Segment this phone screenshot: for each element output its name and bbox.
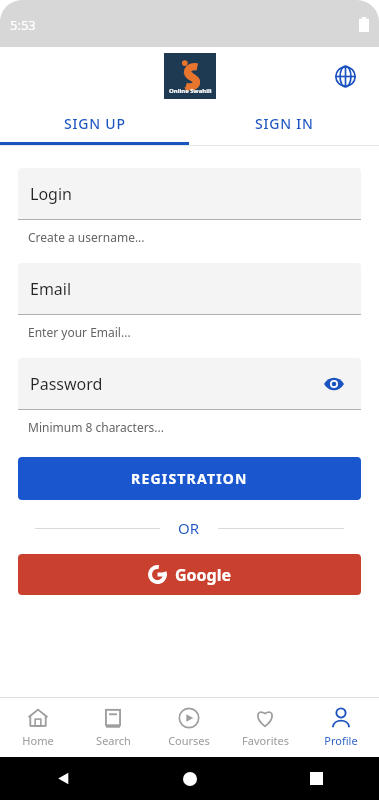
button[interactable]: Home (0, 698, 75, 757)
button[interactable]: Search (75, 698, 151, 757)
button[interactable]: SIGN IN (189, 104, 379, 142)
staticText: Password (30, 373, 103, 395)
staticText: OR (178, 518, 200, 538)
staticText: Profile (324, 733, 358, 748)
staticText: Login (30, 183, 72, 205)
staticText: Favorites (242, 733, 289, 748)
staticText: SIGN UP (64, 114, 126, 133)
button[interactable]: Profile (303, 698, 379, 757)
button[interactable]: Online Swahili (164, 53, 216, 99)
button[interactable]: Favorites (227, 698, 303, 757)
button[interactable]: Change language (325, 56, 365, 96)
staticText: Courses (168, 733, 210, 748)
button[interactable]: Home (127, 757, 253, 800)
staticText: Online Swahili (169, 87, 212, 95)
button[interactable]: Password (18, 358, 361, 409)
staticText: Home (22, 733, 54, 748)
staticText: Email (30, 278, 72, 300)
button[interactable]: SIGN UP (0, 104, 189, 142)
staticText: Enter your Email... (28, 324, 131, 340)
staticText: Minimum 8 characters... (28, 419, 165, 435)
staticText: Search (96, 733, 131, 748)
button[interactable]: Recent apps (253, 757, 379, 800)
button[interactable]: Back (0, 757, 127, 800)
button[interactable]: Login (18, 168, 361, 219)
staticText: 5:53 (10, 16, 36, 34)
staticText: REGISTRATION (131, 469, 248, 488)
button[interactable]: REGISTRATION (18, 457, 361, 500)
staticText: Create a username... (28, 229, 145, 245)
button[interactable]: Email (18, 263, 361, 314)
button[interactable]: Show password (317, 367, 351, 401)
button[interactable]: Google (18, 554, 361, 595)
staticText: Google (175, 564, 232, 586)
staticText: SIGN IN (255, 114, 314, 133)
button[interactable]: Courses (151, 698, 227, 757)
